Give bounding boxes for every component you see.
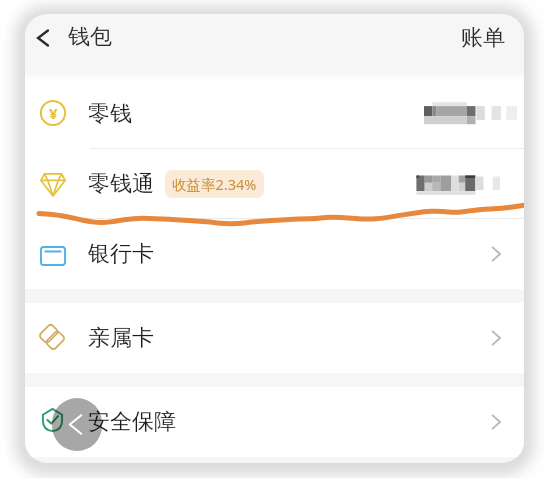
button[interactable]: ¥ bbox=[25, 79, 524, 149]
staticText: 亲属卡 bbox=[88, 324, 154, 352]
button[interactable]: 银行卡 bbox=[25, 219, 524, 289]
button[interactable]: 安全保障 bbox=[25, 387, 524, 457]
staticText: 安全保障 bbox=[88, 408, 176, 436]
staticText: 银行卡 bbox=[88, 240, 154, 268]
staticText: 零钱 bbox=[88, 100, 132, 128]
staticText: 零钱通 bbox=[88, 170, 154, 198]
staticText: 钱包 bbox=[68, 23, 112, 51]
staticText: 账单 bbox=[461, 24, 505, 52]
staticText: 收益率2.34% bbox=[172, 174, 257, 194]
button[interactable]: Back bbox=[30, 25, 56, 51]
staticText: ¥ bbox=[49, 103, 58, 123]
button[interactable]: 零钱通 bbox=[25, 149, 524, 219]
button[interactable]: Back bbox=[52, 398, 102, 451]
button[interactable]: 账单 bbox=[461, 24, 505, 52]
button[interactable]: 亲属卡 bbox=[25, 303, 524, 373]
